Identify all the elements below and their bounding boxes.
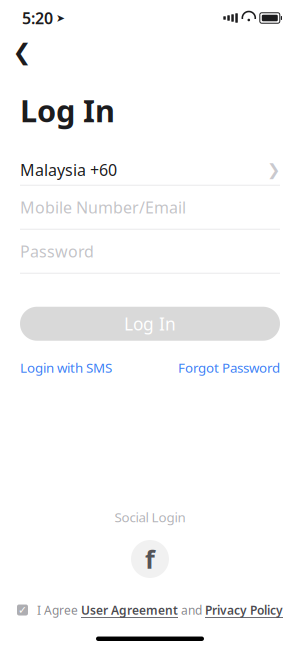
staticText: Social Login — [114, 508, 185, 526]
button[interactable]: Mobile Number/Email — [0, 186, 300, 230]
staticText: Log In — [124, 312, 176, 335]
button[interactable]: Password — [0, 230, 300, 274]
button[interactable]: Log In — [20, 307, 280, 341]
button[interactable]: Malaysia +60 — [0, 155, 300, 186]
button[interactable]: Sign in with Facebook — [131, 540, 169, 578]
button[interactable]: Login with SMS — [20, 359, 112, 376]
staticText: Log In — [20, 90, 115, 131]
staticText: ✓ — [18, 604, 27, 616]
staticText: f — [145, 542, 155, 576]
staticText: Forgot Password — [178, 359, 280, 376]
staticText: I Agree — [37, 602, 81, 618]
staticText: User Agreement — [81, 602, 178, 618]
staticText: Password — [20, 241, 94, 262]
staticText: ❮ — [12, 39, 31, 65]
button[interactable]: Forgot Password — [178, 359, 280, 376]
staticText: Malaysia +60 — [20, 159, 117, 180]
staticText: Privacy Policy — [205, 602, 283, 618]
staticText: 5:20 — [22, 7, 53, 29]
staticText: ➤ — [56, 12, 65, 24]
staticText: Mobile Number/Email — [20, 197, 186, 218]
staticText: ❯ — [267, 161, 280, 179]
button[interactable]: Back — [5, 35, 39, 69]
staticText: Login with SMS — [20, 359, 112, 376]
button[interactable]: ✓ — [0, 601, 300, 619]
staticText: and — [178, 602, 205, 618]
